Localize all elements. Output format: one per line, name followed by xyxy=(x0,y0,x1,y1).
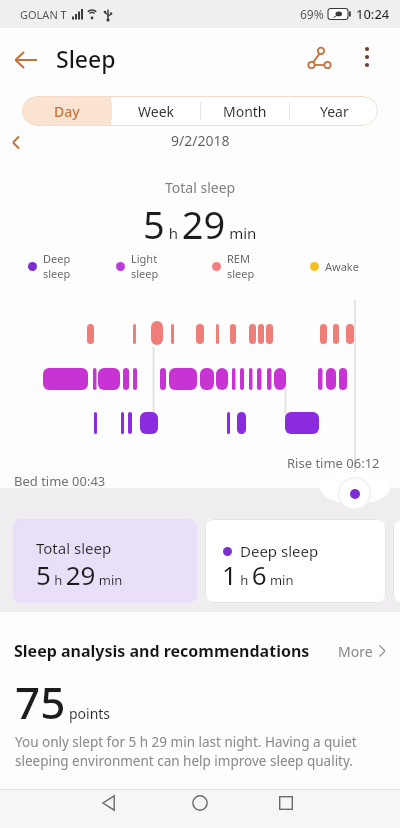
staticText: 10:24 xyxy=(356,5,390,23)
staticText: Month xyxy=(223,102,267,121)
staticText: 5 h 29 min xyxy=(143,198,257,250)
staticText: Bed time 00:43 xyxy=(14,472,106,490)
staticText: GOLAN T xyxy=(20,7,67,22)
staticText: Sleep xyxy=(56,43,116,74)
button[interactable]: Month xyxy=(201,96,289,126)
button[interactable]: Total sleep xyxy=(13,519,197,603)
staticText: Rise time 06:12 xyxy=(287,454,380,472)
staticText: Year xyxy=(320,102,349,121)
staticText: Week xyxy=(138,102,175,121)
staticText: sleep xyxy=(227,266,255,281)
staticText: Awake xyxy=(325,259,359,274)
staticText: 75 points xyxy=(15,672,111,732)
button[interactable] xyxy=(180,789,220,817)
staticText: Total sleep xyxy=(36,538,112,558)
staticText: More xyxy=(338,642,373,661)
staticText: Light xyxy=(131,251,158,266)
button[interactable] xyxy=(6,40,46,80)
button[interactable] xyxy=(266,789,306,817)
staticText: Day xyxy=(54,102,80,121)
staticText: Total sleep xyxy=(165,178,236,197)
button[interactable] xyxy=(4,130,28,154)
staticText: Deep sleep xyxy=(240,541,319,561)
staticText: 9/2/2018 xyxy=(171,131,230,150)
button[interactable]: Sleep analysis and recommendations xyxy=(14,640,386,662)
button[interactable]: Week xyxy=(112,96,200,126)
staticText: 69% xyxy=(300,6,324,22)
button[interactable] xyxy=(348,38,386,76)
button[interactable]: Day xyxy=(22,96,111,126)
staticText: 5 h 29 min xyxy=(36,557,123,592)
staticText: REM xyxy=(227,251,250,266)
staticText: sleep xyxy=(43,266,71,281)
staticText: You only slept for 5 h 29 min last night… xyxy=(15,733,357,769)
staticText: sleep xyxy=(131,266,159,281)
button[interactable]: Deep sleep xyxy=(205,519,386,603)
staticText: 1 h 6 min xyxy=(222,557,294,592)
staticText: Sleep analysis and recommendations xyxy=(14,640,310,662)
button[interactable]: Year xyxy=(290,96,378,126)
button[interactable] xyxy=(300,38,340,78)
staticText: Deep xyxy=(43,251,71,266)
button[interactable] xyxy=(88,789,128,817)
